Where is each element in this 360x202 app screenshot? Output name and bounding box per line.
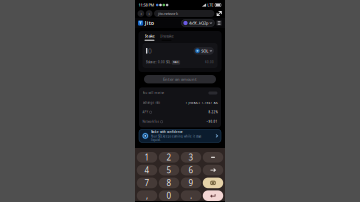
button[interactable]: Stake with confidence, learn more	[139, 129, 221, 142]
staticText: LTE	[207, 2, 213, 8]
button[interactable]: Comma	[137, 190, 157, 201]
staticText: ,	[146, 190, 148, 201]
staticText: 0	[148, 46, 152, 55]
button[interactable]: Period	[181, 190, 201, 201]
staticText: .	[190, 190, 192, 201]
button[interactable]: Camera	[203, 178, 223, 188]
staticText: 8.22%	[208, 110, 217, 114]
staticText: 9	[188, 178, 193, 188]
staticText: ‹	[140, 11, 141, 16]
staticText: 7	[144, 178, 149, 188]
staticText: $0.00	[205, 61, 214, 64]
staticText: Jito	[145, 19, 154, 27]
button[interactable]: 7	[137, 178, 157, 188]
staticText: MAX	[173, 61, 179, 64]
staticText: APY	[143, 110, 149, 114]
staticText: 1	[144, 152, 149, 163]
button[interactable]: Unstake	[159, 33, 173, 41]
button[interactable]: Jito home	[138, 19, 154, 27]
staticText: Stake	[144, 33, 154, 39]
staticText: You will receive	[143, 91, 165, 95]
staticText: 1 JitoSOL = 1.1847 SOL	[185, 101, 217, 104]
button[interactable]: 5	[159, 165, 179, 175]
staticText: 6	[188, 165, 193, 175]
staticText: Unstake	[159, 33, 173, 39]
button[interactable]: 9	[181, 178, 201, 188]
button[interactable]: Stake	[144, 33, 154, 41]
button[interactable]: 1	[137, 152, 157, 163]
button[interactable]: Tab	[203, 165, 223, 175]
button[interactable]: Forward	[146, 10, 152, 17]
staticText: Your SOL keeps earning while it stays li…	[151, 135, 201, 142]
button[interactable]: Full screen	[216, 10, 222, 17]
staticText: SOL	[201, 48, 208, 53]
staticText: jito.network	[158, 11, 178, 16]
staticText: 5	[166, 165, 171, 175]
button[interactable]: Connected wallet	[181, 19, 214, 26]
button[interactable]: Dash	[203, 152, 223, 163]
button[interactable]: 6	[181, 165, 201, 175]
staticText: ~$0.01	[206, 120, 217, 123]
button[interactable]: Max	[172, 60, 180, 65]
staticText: ›	[149, 11, 150, 16]
staticText: 4x9f…kQ2p	[189, 20, 208, 26]
staticText: Enter an amount	[163, 76, 197, 82]
staticText: Balance: 0.00 SOL	[146, 61, 170, 64]
staticText: 8	[166, 178, 171, 188]
button[interactable]: 0	[159, 190, 179, 201]
staticText: 2	[166, 152, 171, 163]
staticText: Exchange rate	[143, 101, 161, 104]
staticText: 4	[144, 165, 149, 175]
button[interactable]: Address bar	[154, 10, 214, 17]
button[interactable]: Select token, SOL	[193, 47, 214, 55]
staticText: Network fee	[143, 120, 160, 123]
button[interactable]: 4	[137, 165, 157, 175]
button[interactable]: Menu	[216, 20, 222, 26]
staticText: 0	[166, 190, 171, 201]
button[interactable]: Enter an amount	[144, 75, 216, 83]
button[interactable]: 8	[159, 178, 179, 188]
button[interactable]: 2	[159, 152, 179, 163]
button[interactable]: Back	[138, 10, 144, 17]
staticText: 3	[188, 152, 193, 163]
button[interactable]: 3	[181, 152, 201, 163]
staticText: Stake with confidence	[151, 130, 183, 134]
staticText: 11:58 PM	[138, 2, 154, 8]
button[interactable]: Return	[203, 190, 223, 201]
